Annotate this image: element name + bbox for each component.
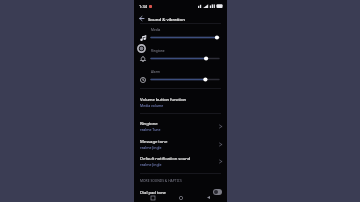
staticText: Message tone: [140, 138, 168, 144]
staticText: Alarm: [151, 70, 160, 74]
button[interactable]: Message tone: [134, 136, 227, 152]
button[interactable]: Back: [137, 14, 146, 23]
staticText: Ringtone: [140, 120, 158, 126]
staticText: Default notification sound: [140, 155, 191, 161]
staticText: Volume button function: [140, 96, 187, 102]
staticText: Sound & vibration: [148, 16, 185, 22]
staticText: Media volume: [140, 103, 164, 108]
button[interactable]: Home: [173, 193, 189, 202]
button[interactable]: Recents: [145, 193, 161, 202]
staticText: MORE SOUNDS & HAPTICS: [140, 178, 182, 182]
staticText: Ringtone: [151, 49, 165, 53]
staticText: realme Jingle: [140, 145, 162, 150]
button[interactable]: Back: [200, 193, 216, 202]
button[interactable]: Volume button function: [134, 94, 227, 110]
button[interactable]: Default notification sound: [134, 153, 227, 169]
staticText: realme Jingle: [140, 162, 162, 167]
button[interactable]: Ringtone: [134, 118, 227, 134]
staticText: Media: [151, 28, 161, 32]
staticText: 1:34: [139, 4, 147, 9]
button[interactable]: Dial pad tone: [134, 186, 227, 197]
staticText: realme Tune: [140, 127, 161, 132]
staticText: Dial pad tone: [140, 189, 213, 195]
